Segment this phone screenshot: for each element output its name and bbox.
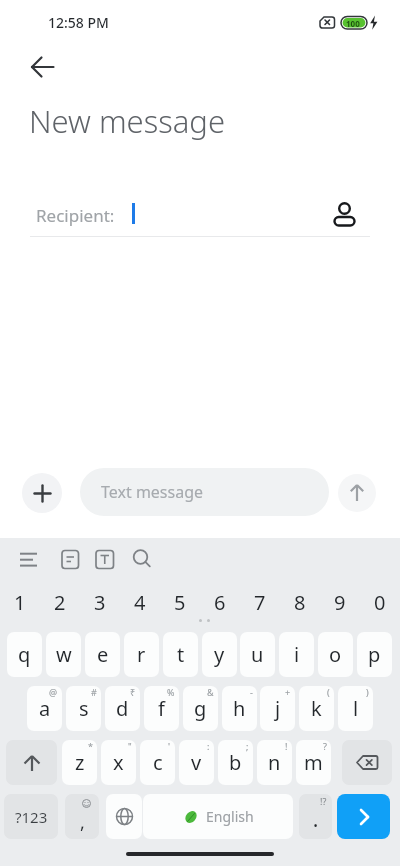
button[interactable]: v: [179, 740, 214, 785]
button[interactable]: x: [101, 740, 136, 785]
staticText: ?: [323, 740, 327, 752]
button[interactable]: d: [105, 686, 140, 731]
button[interactable]: q: [7, 632, 42, 677]
button[interactable]: m: [296, 740, 331, 785]
staticText: o: [329, 641, 342, 668]
button[interactable]: k: [299, 686, 334, 731]
staticText: ?123: [15, 807, 48, 827]
staticText: f: [158, 695, 165, 722]
staticText: &: [207, 686, 214, 698]
staticText: k: [311, 695, 322, 722]
button[interactable]: r: [124, 632, 159, 677]
button[interactable]: 9: [320, 584, 360, 620]
button[interactable]: 8: [280, 584, 320, 620]
button[interactable]: [106, 794, 142, 839]
button[interactable]: [330, 196, 360, 232]
button[interactable]: e: [85, 632, 120, 677]
button[interactable]: 6: [200, 584, 240, 620]
staticText: 100: [346, 18, 360, 29]
staticText: 7: [254, 589, 266, 616]
button[interactable]: 7: [240, 584, 280, 620]
button[interactable]: [342, 740, 392, 785]
staticText: r: [137, 641, 146, 668]
button[interactable]: n: [257, 740, 292, 785]
button[interactable]: h: [222, 686, 257, 731]
button[interactable]: ,: [65, 794, 99, 839]
staticText: 8: [294, 589, 306, 616]
button[interactable]: Text message: [80, 468, 329, 516]
button[interactable]: 0: [360, 584, 400, 620]
staticText: #: [91, 686, 97, 698]
button[interactable]: y: [202, 632, 237, 677]
button[interactable]: [6, 740, 57, 785]
button[interactable]: 1: [0, 584, 40, 620]
staticText: l: [353, 695, 359, 722]
button[interactable]: l: [338, 686, 373, 731]
button[interactable]: [92, 547, 116, 571]
button[interactable]: c: [140, 740, 175, 785]
button[interactable]: j: [260, 686, 295, 731]
staticText: m: [304, 749, 323, 776]
staticText: q: [18, 641, 31, 668]
button[interactable]: [24, 50, 60, 84]
button[interactable]: p: [357, 632, 392, 677]
button[interactable]: f: [144, 686, 179, 731]
staticText: y: [214, 641, 225, 668]
button[interactable]: z: [62, 740, 97, 785]
staticText: a: [39, 695, 51, 722]
staticText: h: [233, 695, 246, 722]
staticText: 0: [374, 589, 386, 616]
staticText: b: [229, 749, 242, 776]
button[interactable]: a: [27, 686, 62, 731]
staticText: *: [88, 740, 93, 752]
staticText: 2: [54, 589, 66, 616]
button[interactable]: [58, 547, 82, 571]
staticText: .: [313, 807, 319, 833]
staticText: (: [327, 686, 330, 698]
staticText: -: [250, 686, 253, 698]
button[interactable]: [338, 474, 376, 512]
button[interactable]: b: [218, 740, 253, 785]
button[interactable]: 5: [160, 584, 200, 620]
button[interactable]: English: [143, 794, 293, 839]
button[interactable]: 2: [40, 584, 80, 620]
staticText: t: [177, 641, 185, 668]
staticText: !: [285, 740, 288, 752]
staticText: !?: [320, 795, 327, 807]
staticText: 3: [94, 589, 106, 616]
button[interactable]: t: [163, 632, 198, 677]
button[interactable]: .: [299, 794, 332, 839]
staticText: p: [368, 641, 381, 668]
staticText: @: [49, 686, 58, 698]
button[interactable]: ?123: [4, 794, 58, 839]
button[interactable]: [22, 473, 62, 513]
staticText: x: [113, 749, 124, 776]
button[interactable]: 4: [120, 584, 160, 620]
staticText: Text message: [101, 481, 204, 503]
button[interactable]: [16, 548, 40, 572]
staticText: 6: [214, 589, 226, 616]
button[interactable]: i: [279, 632, 314, 677]
staticText: 4: [134, 589, 146, 616]
staticText: 12:58 PM: [48, 13, 109, 32]
button[interactable]: 3: [80, 584, 120, 620]
staticText: s: [79, 695, 89, 722]
button[interactable]: o: [318, 632, 353, 677]
button[interactable]: g: [183, 686, 218, 731]
staticText: New message: [29, 100, 226, 142]
staticText: u: [251, 641, 264, 668]
staticText: ): [366, 686, 369, 698]
staticText: v: [191, 749, 202, 776]
button[interactable]: w: [46, 632, 81, 677]
button[interactable]: [337, 794, 390, 839]
button[interactable]: u: [240, 632, 275, 677]
staticText: 1: [14, 589, 26, 616]
staticText: j: [275, 695, 281, 722]
staticText: ": [128, 740, 132, 752]
staticText: %: [167, 686, 175, 698]
staticText: c: [153, 749, 163, 776]
button[interactable]: [130, 547, 154, 571]
button[interactable]: s: [66, 686, 101, 731]
staticText: ,: [80, 810, 85, 835]
staticText: :: [207, 740, 210, 752]
